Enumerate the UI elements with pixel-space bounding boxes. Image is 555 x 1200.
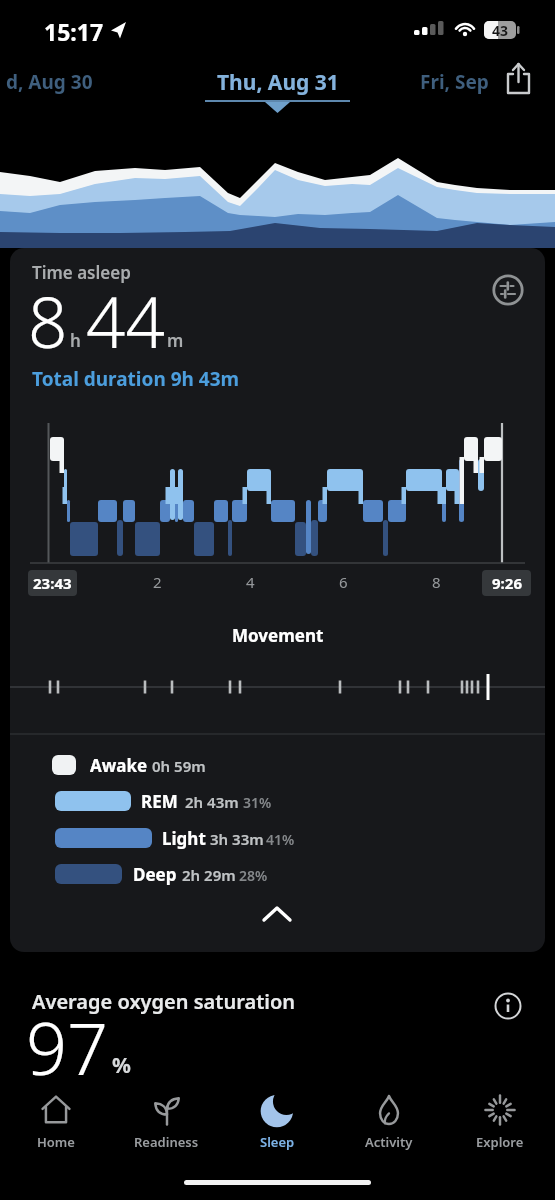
staticText: Light — [162, 827, 206, 850]
staticText: Sleep — [260, 1133, 295, 1151]
staticText: % — [112, 1051, 131, 1080]
button[interactable]: d, Aug 30 — [6, 69, 93, 95]
staticText: Movement — [232, 624, 324, 647]
staticText: 2h 43m — [185, 792, 239, 812]
staticText: Average oxygen saturation — [32, 988, 296, 1015]
button[interactable]: Home — [0, 1088, 111, 1168]
button[interactable] — [502, 62, 536, 96]
button[interactable]: Fri, Sep — [420, 69, 489, 95]
staticText: Total duration 9h 43m — [32, 366, 240, 392]
button[interactable]: Thu, Aug 31 — [217, 68, 339, 97]
staticText: 6 — [339, 572, 348, 592]
staticText: 44 — [86, 274, 165, 368]
staticText: Home — [37, 1133, 75, 1151]
staticText: m — [167, 329, 184, 352]
staticText: 23:43 — [33, 573, 72, 593]
staticText: Explore — [476, 1133, 524, 1151]
button[interactable] — [492, 274, 526, 308]
staticText: 8 — [28, 274, 68, 368]
staticText: Deep — [133, 863, 177, 886]
staticText: 31% — [243, 793, 272, 812]
staticText: h — [70, 329, 81, 352]
staticText: 4 — [246, 572, 255, 592]
staticText: 8 — [432, 572, 441, 592]
staticText: Readiness — [134, 1133, 199, 1151]
button[interactable]: Sleep — [222, 1088, 333, 1168]
button[interactable] — [260, 903, 294, 925]
staticText: 28% — [239, 866, 268, 885]
staticText: Awake — [90, 754, 148, 777]
staticText: Time asleep — [32, 261, 131, 284]
staticText: 41% — [266, 830, 295, 849]
staticText: Activity — [365, 1133, 413, 1151]
staticText: 2 — [153, 572, 162, 592]
staticText: 2h 29m — [182, 865, 236, 885]
staticText: 9:26 — [492, 573, 522, 593]
staticText: REM — [141, 790, 178, 813]
staticText: 15:17 — [44, 16, 104, 47]
staticText: 43 — [492, 21, 509, 39]
button[interactable]: Explore — [444, 1088, 555, 1168]
staticText: 3h 33m — [210, 829, 264, 849]
button[interactable]: Readiness — [111, 1088, 222, 1168]
staticText: 0h 59m — [152, 756, 206, 776]
staticText: 97 — [26, 998, 109, 1096]
button[interactable] — [494, 992, 522, 1020]
button[interactable]: Activity — [333, 1088, 444, 1168]
